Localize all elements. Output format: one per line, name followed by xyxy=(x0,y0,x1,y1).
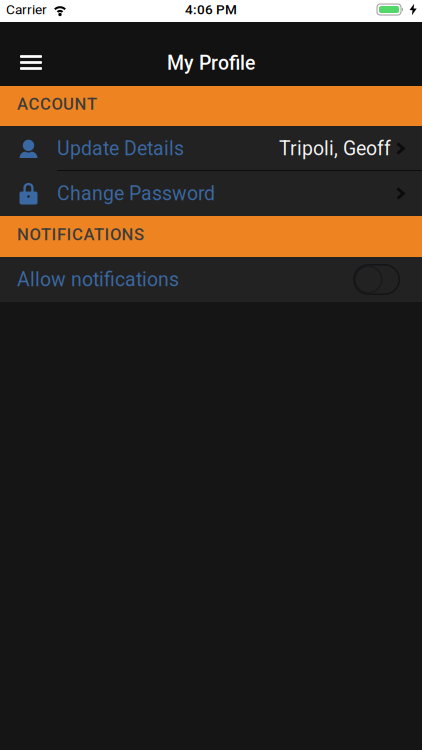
staticText: 4:06 PM xyxy=(185,1,237,17)
staticText: Tripoli, Geoff xyxy=(279,137,391,160)
staticText: My Profile xyxy=(167,52,255,74)
button[interactable]: Update Details xyxy=(0,126,422,171)
staticText: Change Password xyxy=(57,182,215,205)
staticText: NOTIFICATIONS xyxy=(17,225,144,244)
button[interactable]: Allow notifications xyxy=(353,264,400,295)
staticText: Carrier xyxy=(6,1,47,17)
staticText: Allow notifications xyxy=(17,268,179,291)
staticText: ACCOUNT xyxy=(17,94,97,114)
button[interactable]: Menu xyxy=(0,55,42,70)
button[interactable]: Change Password xyxy=(0,171,422,216)
staticText: Update Details xyxy=(57,137,184,160)
